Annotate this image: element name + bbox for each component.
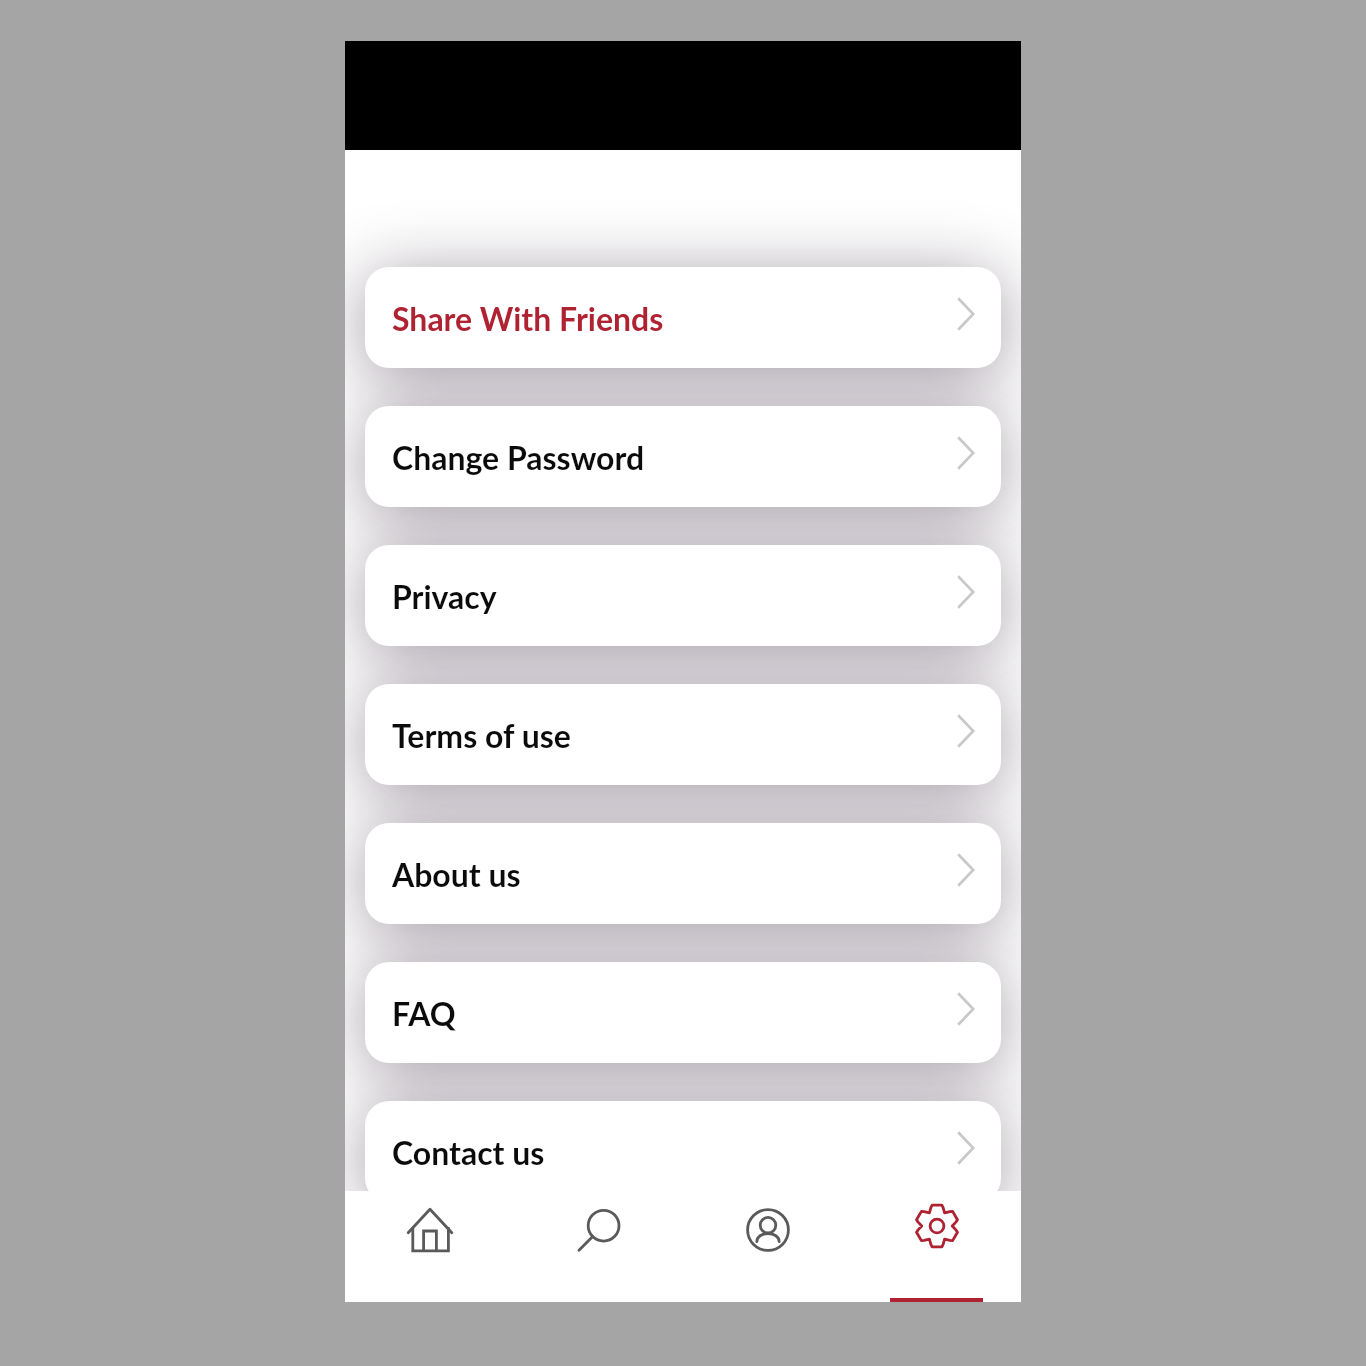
staticText: Change Password — [392, 438, 645, 476]
staticText: Contact us — [392, 1133, 545, 1171]
button[interactable]: Contact us — [365, 1101, 1001, 1191]
staticText: FAQ — [392, 994, 456, 1032]
button[interactable]: Share With Friends — [365, 267, 1001, 368]
button[interactable]: Terms of use — [365, 684, 1001, 785]
button[interactable]: Search — [514, 1191, 683, 1302]
button[interactable]: About us — [365, 823, 1001, 924]
button[interactable]: Profile — [683, 1191, 852, 1302]
button[interactable]: Settings — [852, 1191, 1021, 1302]
staticText: Privacy — [392, 577, 497, 615]
staticText: Terms of use — [392, 716, 571, 754]
button[interactable]: Privacy — [365, 545, 1001, 646]
button[interactable]: FAQ — [365, 962, 1001, 1063]
button[interactable]: Home — [345, 1191, 514, 1302]
button[interactable]: Change Password — [365, 406, 1001, 507]
staticText: About us — [392, 855, 521, 893]
staticText: Share With Friends — [392, 299, 664, 337]
